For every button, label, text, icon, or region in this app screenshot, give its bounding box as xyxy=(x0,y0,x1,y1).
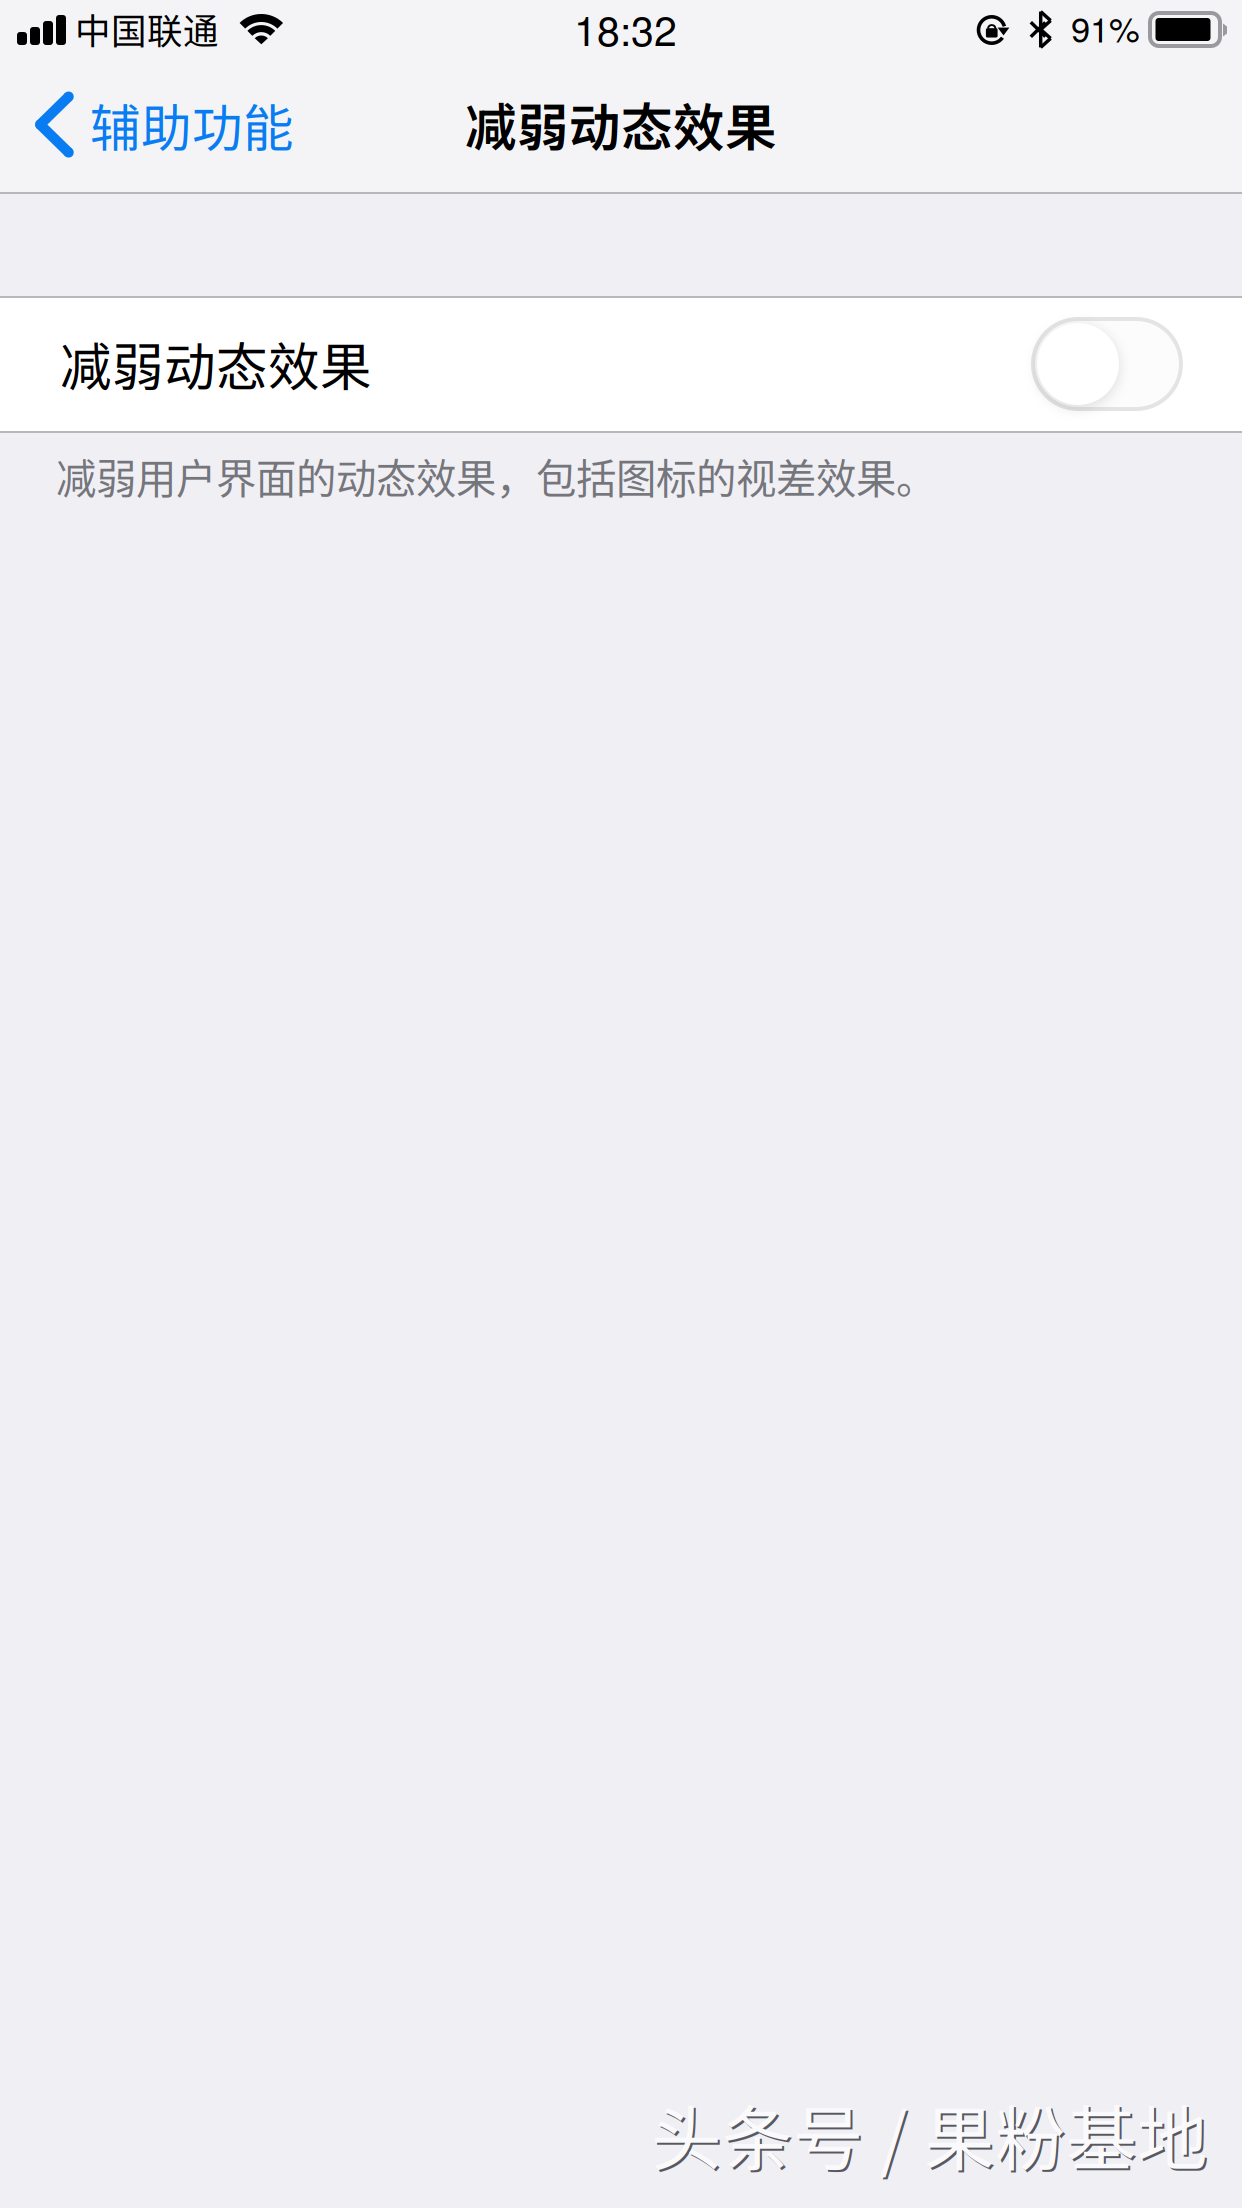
staticText: 中国联通 xyxy=(75,3,219,54)
staticText: 减弱动态效果 xyxy=(465,87,777,161)
staticText: 减弱动态效果 xyxy=(60,326,372,401)
staticText: 头条号 / 果粉基地 xyxy=(651,2083,1208,2185)
button[interactable]: 减弱动态效果 xyxy=(0,298,1242,431)
staticText: 辅助功能 xyxy=(90,88,294,161)
button[interactable]: 返回 辅助功能 xyxy=(0,68,318,181)
staticText: 18:32 xyxy=(574,0,677,58)
staticText: 减弱用户界面的动态效果，包括图标的视差效果。 xyxy=(56,447,936,505)
button[interactable]: 减弱动态效果，关闭 xyxy=(1033,319,1181,409)
staticText: 头条号 / 果粉基地 xyxy=(653,2085,1210,2187)
staticText: 91% xyxy=(1071,3,1140,52)
